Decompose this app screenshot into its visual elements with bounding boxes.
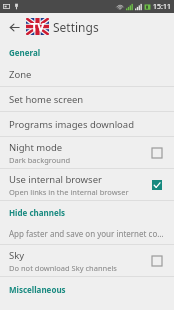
button[interactable]: Checked — [148, 176, 166, 194]
staticText: Set home screen — [9, 93, 84, 106]
staticText: Hide channels — [9, 207, 66, 218]
staticText: Settings — [53, 19, 99, 35]
staticText: 15:11 — [153, 2, 171, 12]
button[interactable]: Use internal browser — [0, 169, 174, 200]
staticText: General — [9, 47, 41, 58]
button[interactable]: Set home screen — [0, 87, 174, 111]
staticText: Sky — [9, 249, 25, 262]
staticText: Miscellaneous — [9, 284, 66, 295]
staticText: TV — [31, 19, 45, 34]
staticText: Night mode — [9, 141, 63, 154]
button[interactable]: Zone — [0, 62, 174, 86]
button[interactable]: Unchecked — [148, 144, 166, 162]
staticText: Programs images download — [9, 118, 135, 131]
button[interactable]: Back — [4, 17, 24, 37]
staticText: Use internal browser — [9, 173, 102, 186]
staticText: Zone — [9, 68, 32, 81]
staticText: Do not download Sky channels — [9, 263, 117, 273]
button[interactable]: Programs images download — [0, 112, 174, 136]
staticText: Dark background — [9, 155, 71, 165]
button[interactable]: Night mode — [0, 137, 174, 168]
button[interactable]: TV logo — [26, 18, 49, 35]
staticText: Open links in the internal browser — [9, 187, 129, 197]
button[interactable]: Sky — [0, 245, 174, 276]
button[interactable]: Unchecked — [148, 252, 166, 270]
staticText: App faster and save on your internet con… — [9, 228, 165, 239]
